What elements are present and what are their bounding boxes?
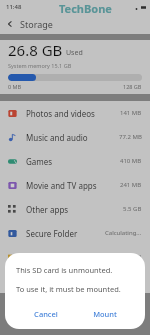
staticText: To use it, it must be mounted.: [16, 284, 121, 294]
staticText: Files: [26, 252, 43, 263]
staticText: 77.2 MB: [119, 133, 142, 141]
staticText: Other apps: [26, 204, 69, 215]
button[interactable]: Movie and TV apps: [0, 173, 150, 197]
button[interactable]: Other apps: [0, 197, 150, 221]
staticText: Cancel: [34, 309, 58, 319]
staticText: 178 MB: [120, 253, 142, 261]
staticText: Photos and videos: [26, 108, 95, 119]
button[interactable]: Mount: [75, 304, 134, 324]
staticText: Used: [66, 48, 83, 58]
button[interactable]: Photos and videos: [0, 101, 150, 125]
staticText: System memory 15.1 GB: [8, 62, 72, 69]
staticText: 0 MB: [8, 83, 22, 90]
button[interactable]: Games: [0, 149, 150, 173]
button[interactable]: Back: [0, 14, 20, 34]
staticText: Games: [26, 156, 53, 167]
staticText: Calculating...: [105, 229, 142, 237]
staticText: This SD card is unmounted.: [16, 265, 113, 275]
staticText: Secure Folder: [26, 228, 78, 239]
staticText: 11:48: [6, 3, 22, 11]
staticText: TechBone: [59, 1, 112, 15]
staticText: Music and audio: [26, 132, 88, 143]
button[interactable]: SD card: [0, 269, 150, 293]
staticText: Movie and TV apps: [26, 180, 97, 191]
button[interactable]: Music and audio: [0, 125, 150, 149]
staticText: Mount: [93, 309, 117, 319]
staticText: 128 GB: [123, 83, 142, 90]
staticText: 26.8 GB: [8, 40, 63, 60]
button[interactable]: Files: [0, 245, 150, 269]
staticText: 410 MB: [120, 157, 142, 165]
button[interactable]: Secure Folder: [0, 221, 150, 245]
staticText: 5.5 GB: [123, 205, 142, 213]
staticText: Storage: [20, 18, 53, 30]
staticText: 141 MB: [120, 109, 142, 117]
button[interactable]: Cancel: [16, 304, 75, 324]
staticText: 241 MB: [120, 181, 142, 189]
